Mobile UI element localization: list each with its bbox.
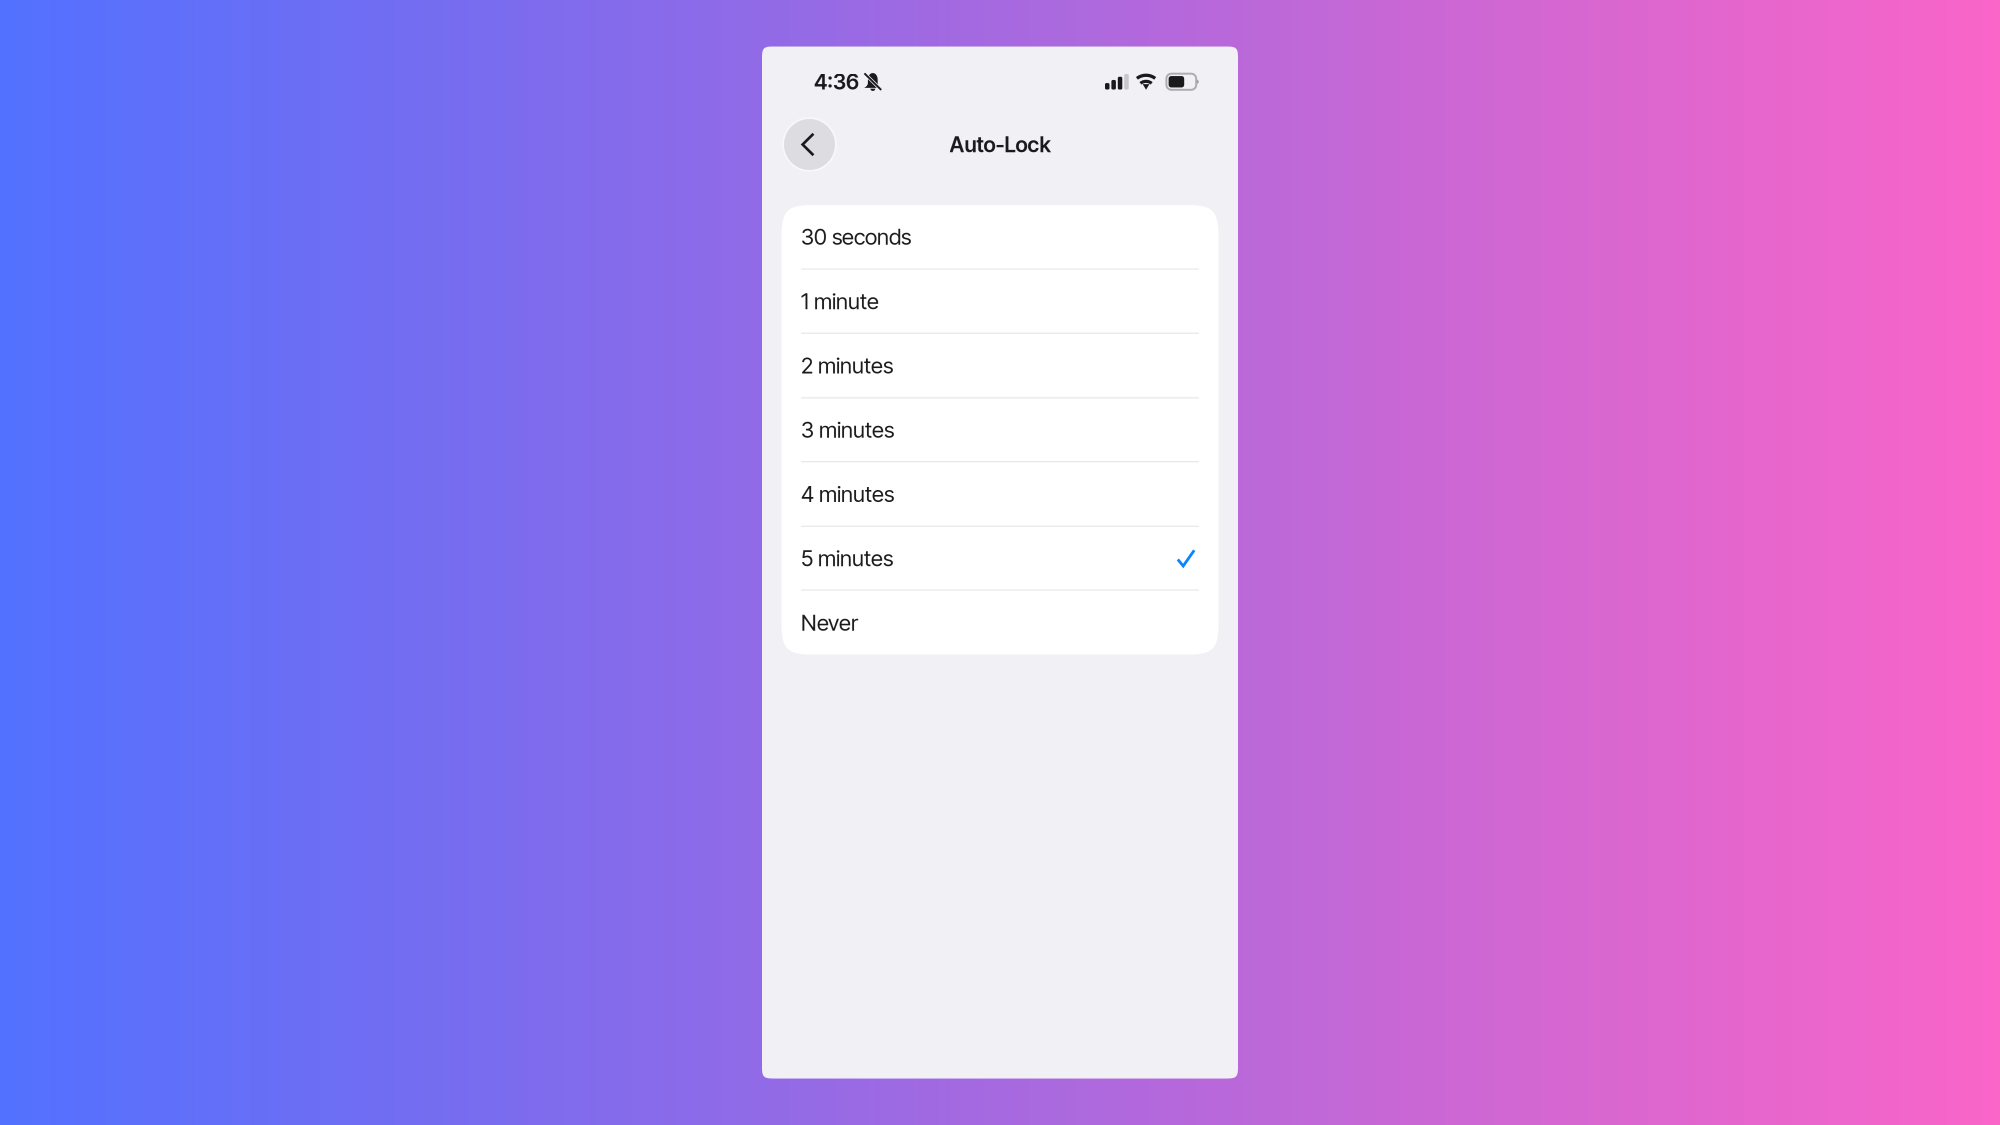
- staticText: Never: [801, 609, 858, 636]
- button[interactable]: Back: [783, 118, 836, 171]
- button[interactable]: 4 minutes: [781, 462, 1218, 527]
- staticText: 4 minutes: [801, 481, 894, 507]
- staticText: Auto-Lock: [949, 132, 1050, 157]
- staticText: 2 minutes: [801, 352, 893, 379]
- staticText: 5 minutes: [801, 545, 893, 571]
- staticText: 4:36: [814, 69, 859, 95]
- button[interactable]: 3 minutes: [781, 398, 1218, 462]
- staticText: 3 minutes: [801, 416, 894, 443]
- button[interactable]: 1 minute: [781, 270, 1218, 334]
- button[interactable]: 5 minutes: [781, 527, 1218, 591]
- button[interactable]: 2 minutes: [781, 334, 1218, 398]
- staticText: 1 minute: [801, 288, 879, 314]
- button[interactable]: 30 seconds: [781, 205, 1218, 270]
- staticText: 30 seconds: [801, 223, 911, 250]
- button[interactable]: Never: [781, 591, 1218, 655]
